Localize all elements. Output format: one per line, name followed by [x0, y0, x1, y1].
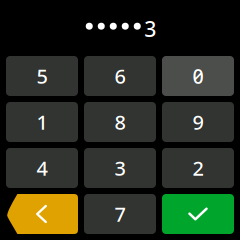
button[interactable]: 9	[162, 102, 234, 142]
staticText: 9	[192, 109, 203, 135]
staticText: 4	[36, 155, 47, 181]
button[interactable]: 1	[6, 102, 78, 142]
staticText: 2	[192, 155, 203, 181]
button[interactable]: Confirm	[162, 194, 234, 234]
button[interactable]: 5	[6, 56, 78, 96]
button[interactable]: 2	[162, 148, 234, 188]
button[interactable]: 6	[84, 56, 156, 96]
staticText: 6	[114, 63, 125, 89]
button[interactable]: 8	[84, 102, 156, 142]
button[interactable]: Delete	[6, 194, 78, 234]
button[interactable]: 0	[162, 56, 234, 96]
staticText: 8	[114, 109, 125, 135]
staticText: 3	[144, 14, 156, 43]
staticText: 1	[36, 109, 47, 135]
staticText: 5	[36, 63, 47, 89]
button[interactable]: 7	[84, 194, 156, 234]
staticText: 7	[114, 201, 125, 227]
staticText: 0	[192, 63, 203, 89]
button[interactable]: 3	[84, 148, 156, 188]
button[interactable]: 4	[6, 148, 78, 188]
staticText: 3	[114, 155, 125, 181]
